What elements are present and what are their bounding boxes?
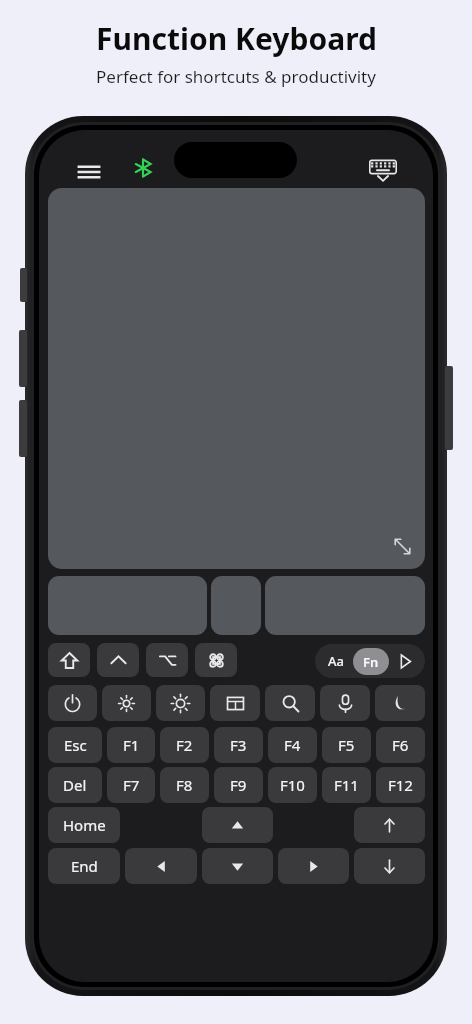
button[interactable]: Bluetooth connected bbox=[127, 152, 159, 184]
button[interactable]: F3 bbox=[214, 727, 263, 763]
button[interactable]: Next bbox=[389, 648, 421, 674]
staticText: F7 bbox=[123, 775, 140, 795]
button[interactable]: Up bbox=[354, 807, 425, 843]
button[interactable]: F5 bbox=[322, 727, 371, 763]
button[interactable]: Page down bbox=[202, 848, 273, 884]
staticText: F4 bbox=[284, 735, 301, 755]
button[interactable]: Page up bbox=[202, 807, 273, 843]
staticText: F10 bbox=[280, 775, 305, 795]
button[interactable]: F9 bbox=[214, 767, 263, 803]
button[interactable]: Down bbox=[354, 848, 425, 884]
button[interactable]: Search bbox=[265, 685, 315, 721]
staticText: Esc bbox=[64, 735, 87, 755]
staticText: F6 bbox=[392, 735, 409, 755]
staticText: F8 bbox=[176, 775, 193, 795]
button[interactable]: option bbox=[146, 643, 188, 677]
button[interactable] bbox=[48, 188, 425, 569]
button[interactable]: Dictation bbox=[320, 685, 370, 721]
button[interactable]: Do not disturb bbox=[375, 685, 425, 721]
staticText: Fn bbox=[363, 653, 379, 671]
button[interactable]: Aa bbox=[319, 648, 353, 674]
staticText: F5 bbox=[338, 735, 355, 755]
button[interactable]: Left bbox=[125, 848, 197, 884]
button[interactable]: F1 bbox=[107, 727, 155, 763]
staticText: F12 bbox=[388, 775, 413, 795]
button[interactable]: F8 bbox=[160, 767, 209, 803]
button[interactable]: F7 bbox=[107, 767, 155, 803]
staticText: End bbox=[71, 856, 98, 876]
button[interactable]: Home bbox=[48, 807, 120, 843]
button[interactable]: F11 bbox=[322, 767, 371, 803]
staticText: Del bbox=[63, 775, 87, 795]
button[interactable]: Power bbox=[48, 685, 97, 721]
button[interactable]: control bbox=[97, 643, 139, 677]
button[interactable]: command bbox=[195, 643, 237, 677]
button[interactable]: F12 bbox=[376, 767, 425, 803]
staticText: F1 bbox=[123, 735, 140, 755]
staticText: Aa bbox=[328, 652, 344, 670]
button[interactable]: Del bbox=[48, 767, 102, 803]
button[interactable]: Mission control bbox=[210, 685, 260, 721]
staticText: Perfect for shortcuts & productivity bbox=[96, 65, 376, 88]
button[interactable]: Brightness down bbox=[102, 685, 151, 721]
staticText: F2 bbox=[176, 735, 193, 755]
button[interactable]: Hide keyboard bbox=[361, 148, 405, 192]
button[interactable]: End bbox=[48, 848, 120, 884]
button[interactable]: Menu bbox=[69, 152, 109, 192]
button[interactable]: F4 bbox=[268, 727, 317, 763]
button[interactable]: shift bbox=[48, 643, 90, 677]
staticText: Home bbox=[63, 815, 106, 835]
button[interactable]: Esc bbox=[48, 727, 102, 763]
button[interactable]: F6 bbox=[376, 727, 425, 763]
button[interactable]: Fn bbox=[353, 648, 389, 675]
button[interactable]: F2 bbox=[160, 727, 209, 763]
button[interactable]: Left click bbox=[48, 576, 207, 635]
button[interactable]: Right bbox=[278, 848, 349, 884]
staticText: Function Keyboard bbox=[96, 18, 377, 59]
button[interactable]: F10 bbox=[268, 767, 317, 803]
button[interactable]: Right click bbox=[265, 576, 425, 635]
staticText: F11 bbox=[334, 775, 359, 795]
staticText: F3 bbox=[230, 735, 247, 755]
staticText: F9 bbox=[230, 775, 247, 795]
button[interactable]: Brightness up bbox=[156, 685, 205, 721]
button[interactable]: Middle click bbox=[211, 576, 261, 635]
